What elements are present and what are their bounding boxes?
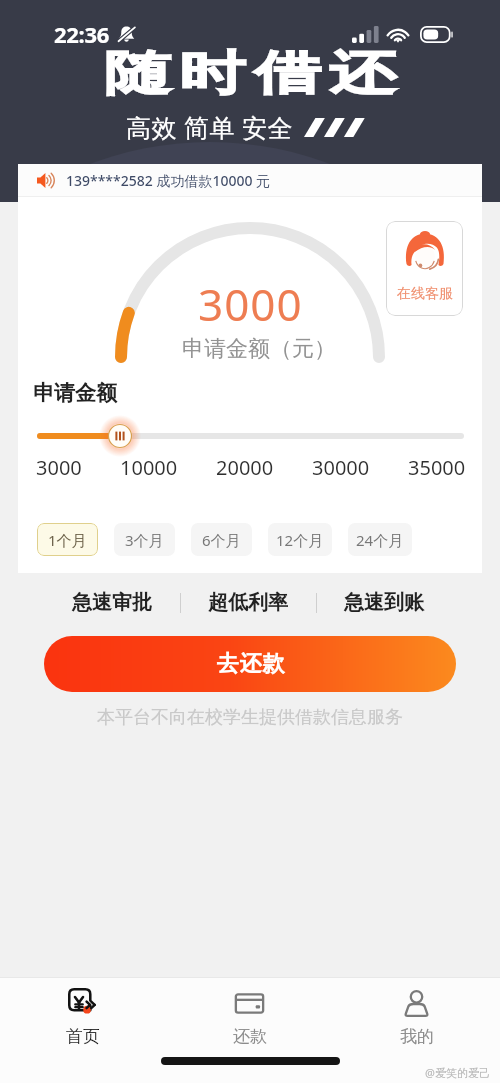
staticText: 还款	[233, 1026, 267, 1046]
button[interactable]: 139****2582 成功借款10000 元	[18, 164, 482, 196]
staticText: 超低利率	[208, 590, 288, 615]
button[interactable]: 去还款	[44, 636, 456, 692]
button[interactable]: 6个月	[191, 523, 252, 556]
staticText: 急速到账	[344, 590, 424, 615]
button[interactable]: 在线客服	[386, 221, 463, 316]
button[interactable]: 3个月	[114, 523, 175, 556]
staticText: 22:36	[54, 19, 110, 49]
staticText: 6个月	[202, 530, 241, 550]
staticText: 首页	[66, 1026, 100, 1046]
button[interactable]: 我的	[333, 988, 500, 1046]
staticText: 3000	[36, 454, 82, 481]
staticText: 高效 简单 安全	[126, 110, 294, 144]
staticText: 在线客服	[397, 285, 453, 303]
staticText: 35000	[408, 454, 466, 481]
button[interactable]: 1个月	[37, 523, 98, 556]
staticText: 随时借还	[100, 44, 400, 102]
staticText: 申请金额	[33, 380, 117, 406]
staticText: 去还款	[216, 650, 285, 678]
staticText: 139****2582 成功借款10000 元	[66, 171, 271, 190]
staticText: 30000	[312, 454, 370, 481]
staticText: @爱笑的爱己	[425, 1065, 490, 1080]
staticText: 本平台不向在校学生提供借款信息服务	[97, 706, 403, 729]
button[interactable]: 12个月	[268, 523, 332, 556]
button[interactable]: 24个月	[348, 523, 412, 556]
staticText: 24个月	[356, 530, 404, 550]
staticText: 申请金额（元）	[182, 335, 336, 363]
staticText: 12个月	[276, 530, 324, 550]
staticText: 急速审批	[72, 590, 152, 615]
staticText: 3000	[198, 274, 303, 334]
staticText: 1个月	[48, 530, 87, 550]
button[interactable]: 还款	[166, 988, 333, 1046]
staticText: 我的	[400, 1026, 434, 1046]
staticText: 3个月	[125, 530, 164, 550]
staticText: 20000	[216, 454, 274, 481]
staticText: 10000	[120, 454, 178, 481]
button[interactable]: 首页	[0, 988, 166, 1046]
